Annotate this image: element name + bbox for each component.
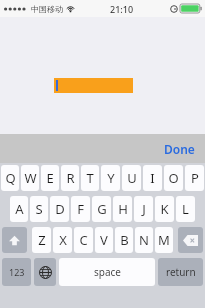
staticText: U: [127, 169, 137, 187]
button[interactable]: K: [155, 196, 174, 222]
staticText: B: [120, 231, 129, 249]
staticText: F: [77, 200, 84, 218]
staticText: X: [59, 231, 67, 249]
staticText: V: [100, 231, 108, 249]
button[interactable]: R: [61, 165, 79, 191]
button[interactable]: S: [30, 196, 48, 222]
button[interactable]: Shift: [2, 227, 27, 253]
button[interactable]: O: [164, 165, 183, 191]
staticText: G: [97, 200, 107, 218]
staticText: space: [94, 265, 121, 279]
staticText: H: [118, 200, 128, 218]
button[interactable]: W: [21, 165, 39, 191]
button[interactable]: G: [92, 196, 111, 222]
button[interactable]: Switch keyboard language: [34, 258, 56, 286]
staticText: 21:10: [110, 3, 134, 15]
button[interactable]: J: [134, 196, 153, 222]
button[interactable]: E: [41, 165, 59, 191]
staticText: W: [24, 169, 37, 187]
button[interactable]: C: [74, 227, 93, 253]
button[interactable]: H: [113, 196, 132, 222]
staticText: D: [55, 200, 65, 218]
button[interactable]: T: [81, 165, 99, 191]
button[interactable]: [54, 78, 133, 93]
staticText: Done: [164, 141, 195, 157]
button[interactable]: space: [59, 258, 155, 286]
staticText: Y: [107, 169, 115, 187]
button[interactable]: L: [176, 196, 195, 222]
button[interactable]: U: [122, 165, 141, 191]
staticText: C: [79, 231, 88, 249]
button[interactable]: D: [50, 196, 69, 222]
button[interactable]: 123: [2, 258, 31, 286]
staticText: O: [168, 169, 179, 187]
button[interactable]: Done: [164, 141, 195, 157]
button[interactable]: P: [185, 165, 204, 191]
button[interactable]: Z: [32, 227, 51, 253]
button[interactable]: I: [143, 165, 162, 191]
staticText: 123: [9, 266, 25, 278]
staticText: S: [35, 200, 43, 218]
button[interactable]: X: [53, 227, 72, 253]
staticText: T: [86, 169, 94, 187]
staticText: R: [66, 169, 75, 187]
button[interactable]: Q: [1, 165, 19, 191]
button[interactable]: B: [115, 227, 133, 253]
button[interactable]: V: [95, 227, 113, 253]
staticText: I: [150, 169, 155, 187]
staticText: N: [139, 231, 149, 249]
button[interactable]: Backspace: [178, 227, 203, 253]
button[interactable]: M: [155, 227, 173, 253]
staticText: E: [46, 169, 54, 187]
staticText: M: [158, 231, 170, 249]
staticText: return: [166, 265, 196, 279]
button[interactable]: return: [158, 258, 203, 286]
staticText: 中国移动: [31, 4, 63, 14]
staticText: Z: [38, 231, 46, 249]
staticText: P: [191, 169, 199, 187]
staticText: J: [142, 200, 146, 218]
button[interactable]: F: [71, 196, 90, 222]
button[interactable]: A: [10, 196, 28, 222]
button[interactable]: N: [135, 227, 153, 253]
staticText: L: [182, 200, 189, 218]
button[interactable]: Y: [101, 165, 120, 191]
staticText: Q: [5, 169, 16, 187]
staticText: A: [15, 200, 24, 218]
staticText: K: [160, 200, 169, 218]
